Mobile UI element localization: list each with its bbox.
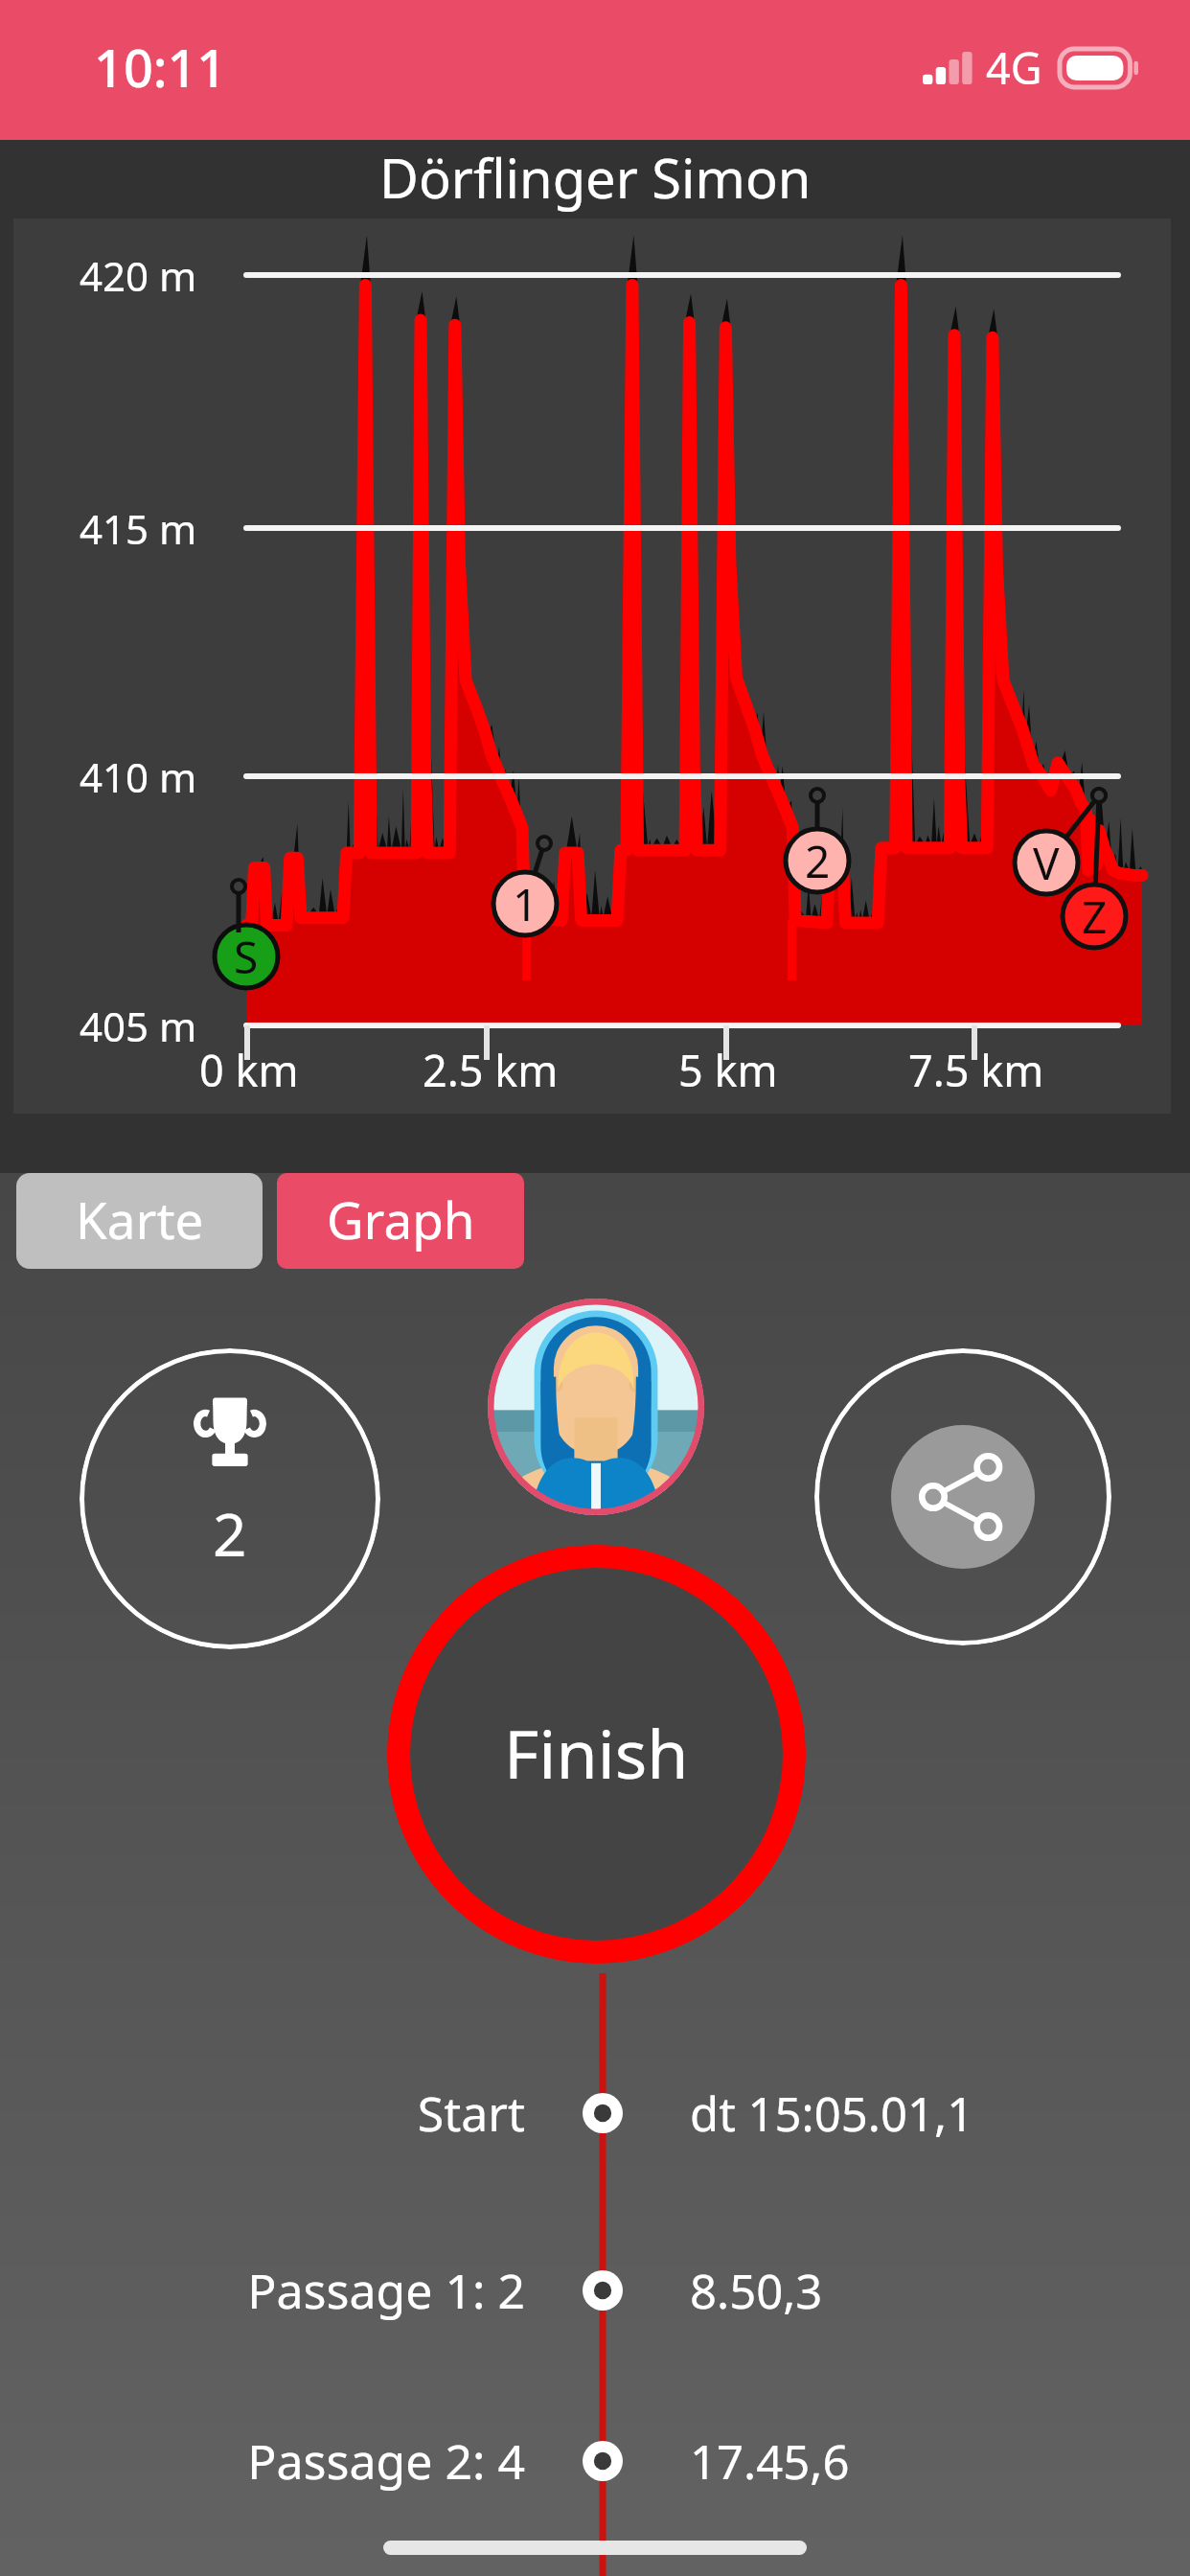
button[interactable]: Ranking (80, 1348, 380, 1649)
staticText: 1 (513, 874, 538, 934)
staticText: 7.5 km (908, 1041, 1044, 1099)
staticText: 410 m (80, 749, 197, 804)
staticText: Start (172, 2081, 525, 2146)
staticText: Finish (504, 1707, 689, 1798)
staticText: V (1033, 833, 1060, 893)
staticText: 2 (213, 1493, 247, 1574)
staticText: S (234, 927, 259, 987)
button[interactable]: Finish (387, 1545, 806, 1964)
button[interactable]: Karte (16, 1173, 263, 1269)
staticText: 420 m (80, 248, 197, 303)
staticText: 2.5 km (423, 1041, 559, 1099)
staticText: dt 15:05.01,1 (690, 2081, 1121, 2146)
staticText: 415 m (80, 501, 197, 556)
staticText: 2 (805, 831, 831, 891)
button[interactable]: Profile picture (488, 1299, 704, 1515)
staticText: 405 m (80, 999, 197, 1053)
staticText: 0 km (199, 1041, 299, 1099)
staticText: 5 km (678, 1041, 778, 1099)
staticText: Passage 2: 4 (172, 2428, 525, 2494)
staticText: 10:11 (94, 32, 227, 103)
button[interactable]: Start (0, 2070, 1190, 2156)
staticText: 8.50,3 (690, 2259, 1121, 2323)
staticText: 4G (986, 38, 1042, 97)
staticText: Karte (76, 1184, 204, 1253)
staticText: Graph (327, 1184, 475, 1253)
staticText: Passage 1: 2 (172, 2258, 525, 2323)
staticText: Z (1082, 886, 1108, 947)
button[interactable]: Passage 1: 2 (0, 2247, 1190, 2334)
staticText: Dörflinger Simon (379, 141, 812, 214)
button[interactable]: Graph (277, 1173, 524, 1269)
button[interactable]: Passage 2: 4 (0, 2418, 1190, 2504)
button[interactable]: Share (814, 1348, 1111, 1645)
staticText: 17.45,6 (690, 2429, 1121, 2494)
